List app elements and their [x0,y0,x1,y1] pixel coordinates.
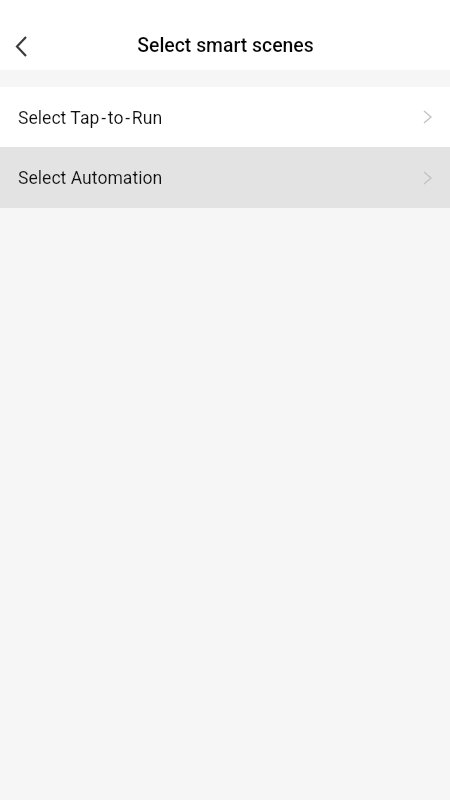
button[interactable]: Select Tap - to - Run [0,87,450,147]
staticText: Select smart scenes [137,34,314,57]
staticText: Select Tap - to - Run [18,108,163,129]
button[interactable]: Back [0,20,41,70]
staticText: Select Automation [18,168,163,189]
button[interactable]: Select Automation [0,147,450,208]
